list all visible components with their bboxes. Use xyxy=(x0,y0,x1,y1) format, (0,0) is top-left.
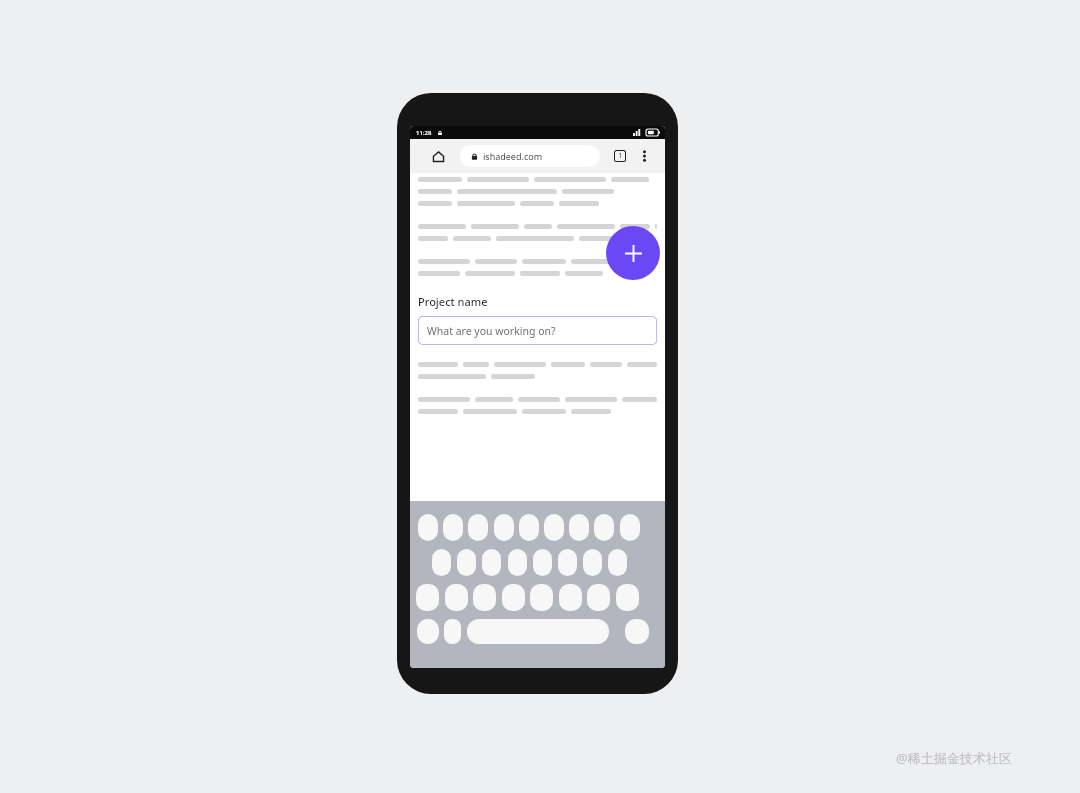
button[interactable] xyxy=(608,549,627,576)
button[interactable] xyxy=(569,514,589,541)
button[interactable] xyxy=(583,549,602,576)
button[interactable] xyxy=(533,549,552,576)
staticText: 1 xyxy=(618,151,623,161)
button[interactable]: More options xyxy=(634,146,654,166)
button[interactable] xyxy=(443,514,463,541)
button[interactable] xyxy=(558,549,577,576)
staticText: Project name xyxy=(418,294,488,309)
button[interactable] xyxy=(444,619,461,644)
button[interactable] xyxy=(445,584,468,611)
button[interactable]: ishadeed.com xyxy=(460,145,600,167)
staticText: What are you working on? xyxy=(427,324,556,338)
button[interactable]: Home xyxy=(427,145,449,167)
button[interactable] xyxy=(519,514,539,541)
button[interactable] xyxy=(559,584,582,611)
button[interactable] xyxy=(594,514,614,541)
staticText: @稀土掘金技术社区 xyxy=(896,749,1012,767)
button[interactable] xyxy=(502,584,525,611)
button[interactable] xyxy=(468,514,488,541)
button[interactable]: What are you working on? xyxy=(418,316,657,345)
button[interactable] xyxy=(416,584,439,611)
button[interactable] xyxy=(620,514,640,541)
button[interactable]: Add project xyxy=(606,226,660,280)
button[interactable]: Space xyxy=(467,619,609,644)
button[interactable] xyxy=(587,584,610,611)
staticText: ishadeed.com xyxy=(483,150,543,162)
button[interactable] xyxy=(432,549,451,576)
button[interactable] xyxy=(473,584,496,611)
button[interactable] xyxy=(625,619,649,644)
button[interactable] xyxy=(494,514,514,541)
button[interactable] xyxy=(508,549,527,576)
button[interactable] xyxy=(616,584,639,611)
button[interactable]: Tabs xyxy=(610,146,630,166)
staticText: 11:28 xyxy=(416,129,432,137)
button[interactable] xyxy=(530,584,553,611)
button[interactable] xyxy=(417,619,439,644)
button[interactable] xyxy=(544,514,564,541)
button[interactable] xyxy=(457,549,476,576)
button[interactable] xyxy=(418,514,438,541)
button[interactable] xyxy=(482,549,501,576)
